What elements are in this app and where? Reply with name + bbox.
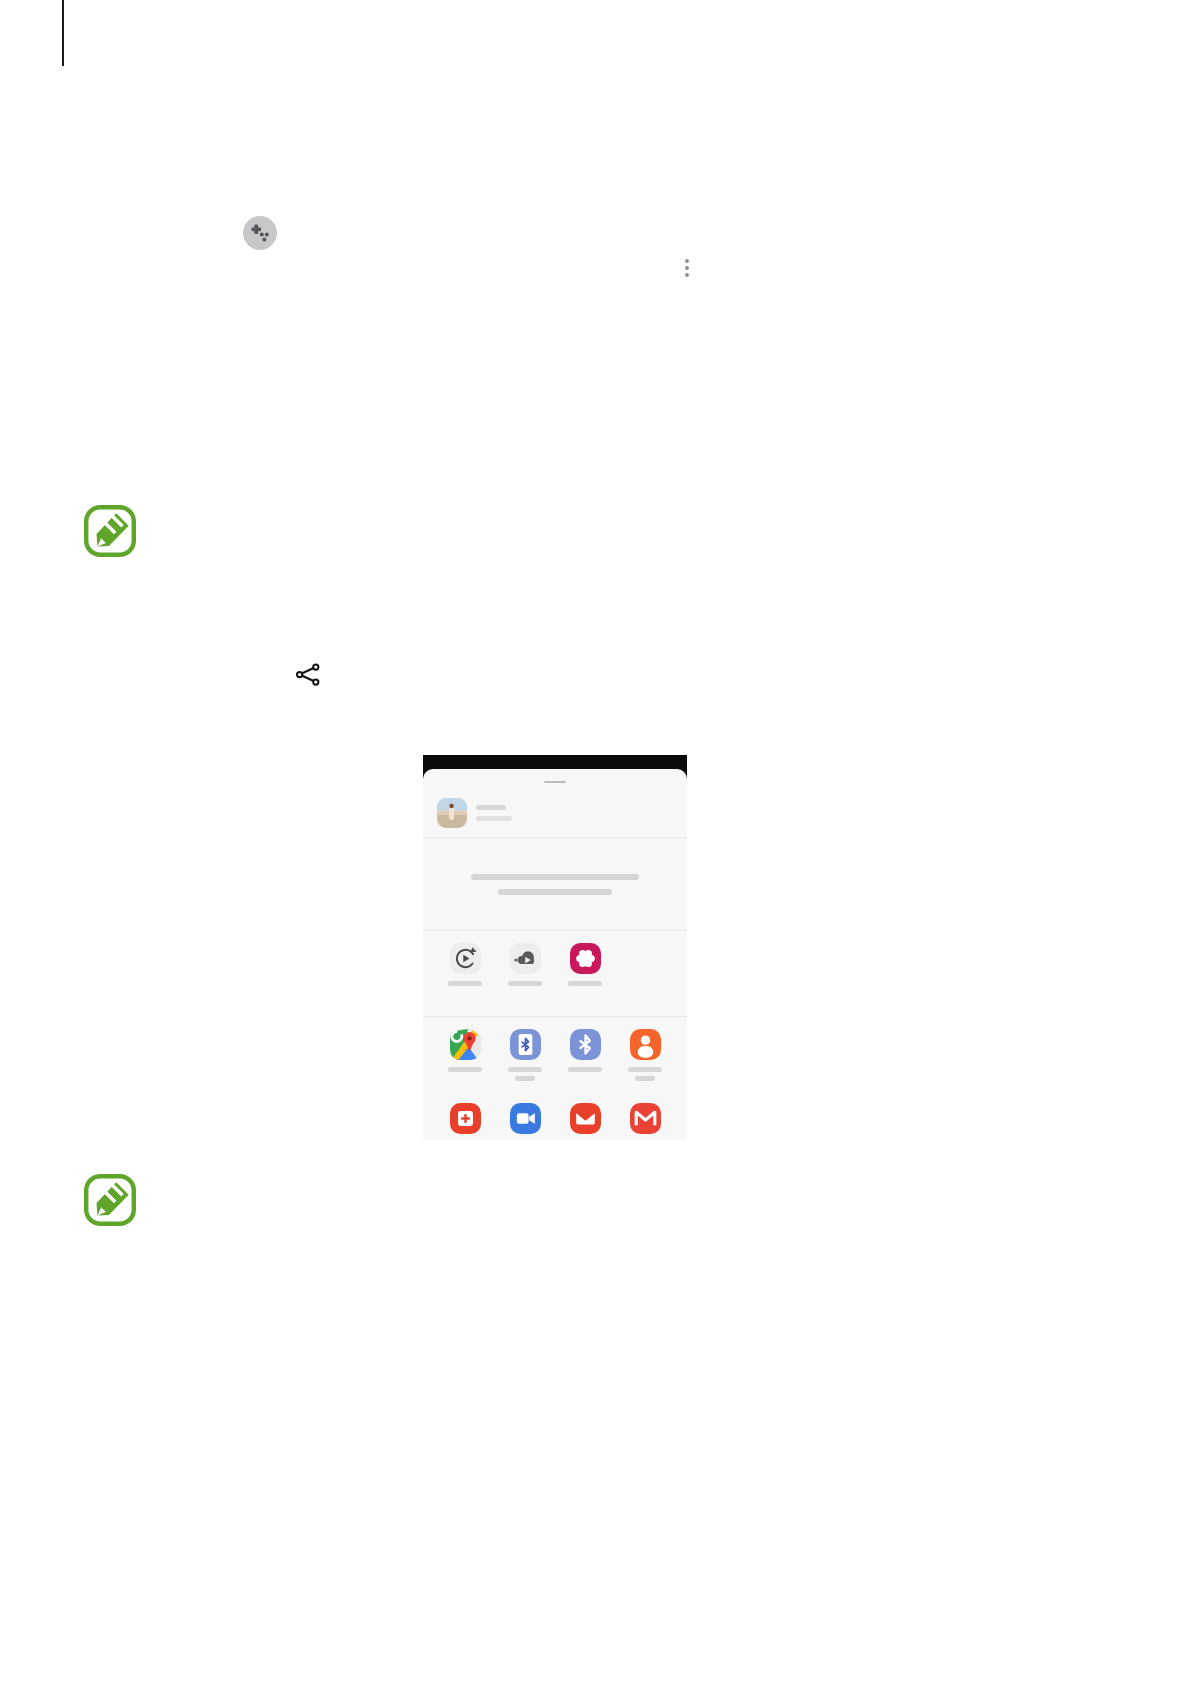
button[interactable]: [495, 943, 555, 986]
button[interactable]: [555, 943, 615, 986]
button[interactable]: Share: [291, 657, 325, 691]
button[interactable]: [495, 1029, 555, 1081]
button[interactable]: [435, 1029, 495, 1072]
button[interactable]: [615, 1103, 675, 1134]
button[interactable]: [435, 943, 495, 986]
button[interactable]: [495, 1103, 555, 1134]
button[interactable]: [435, 1103, 495, 1134]
button[interactable]: [555, 1029, 615, 1072]
button[interactable]: [423, 789, 687, 837]
button[interactable]: Game Launcher: [243, 216, 277, 250]
button[interactable]: [615, 1029, 675, 1081]
button[interactable]: More options: [671, 252, 703, 284]
button[interactable]: [555, 1103, 615, 1134]
